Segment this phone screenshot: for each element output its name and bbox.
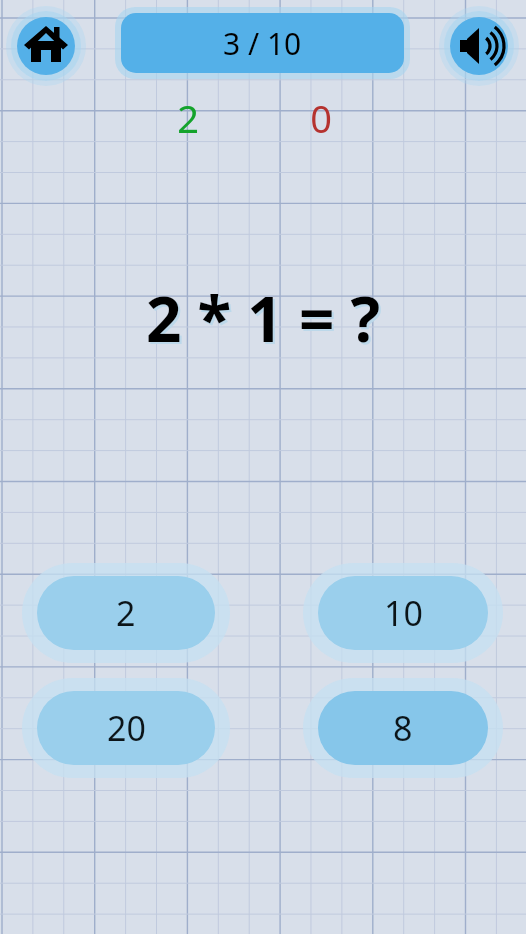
staticText: 0 bbox=[310, 92, 332, 144]
button[interactable]: 2 bbox=[22, 563, 230, 663]
button[interactable]: Sound bbox=[439, 6, 519, 86]
staticText: 2 * 1 = ? bbox=[148, 278, 383, 362]
staticText: 20 bbox=[107, 705, 146, 751]
button[interactable]: 8 bbox=[303, 678, 503, 778]
staticText: 2 bbox=[177, 92, 199, 144]
button[interactable]: 20 bbox=[22, 678, 230, 778]
staticText: 8 bbox=[393, 705, 413, 751]
button[interactable]: Home bbox=[6, 6, 86, 86]
staticText: 10 bbox=[384, 590, 423, 636]
button[interactable]: 3 / 10 bbox=[115, 7, 410, 79]
staticText: 2 bbox=[116, 590, 136, 636]
staticText: 3 / 10 bbox=[223, 23, 302, 64]
button[interactable]: 10 bbox=[303, 563, 503, 663]
staticText: 2 * 1 = ? bbox=[146, 276, 381, 360]
